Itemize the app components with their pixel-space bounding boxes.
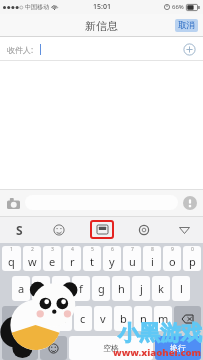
staticText: g: [98, 281, 105, 296]
staticText: m: [158, 311, 169, 326]
button[interactable]: Camera: [5, 195, 21, 211]
staticText: f: [79, 281, 83, 296]
button[interactable]: Emoji keyboard: [40, 336, 67, 360]
button[interactable]: 取消: [175, 19, 198, 32]
button[interactable]: d: [52, 276, 70, 301]
staticText: a: [18, 281, 25, 296]
button[interactable]: 1: [2, 246, 21, 271]
button[interactable]: Sogou input: [10, 221, 28, 239]
button[interactable]: 2: [23, 246, 41, 271]
button[interactable]: v: [94, 306, 112, 331]
button[interactable]: 0: [183, 246, 201, 271]
staticText: www.xiaohei.com: [113, 346, 202, 359]
staticText: p: [189, 254, 196, 269]
button[interactable]: 空格: [69, 336, 153, 360]
button[interactable]: 6: [103, 246, 121, 271]
staticText: 123: [13, 343, 27, 354]
staticText: 空格: [103, 343, 119, 353]
button[interactable]: Backspace: [174, 306, 201, 331]
button[interactable]: Emoji: [50, 221, 68, 239]
staticText: 4: [71, 246, 74, 253]
button[interactable]: s: [32, 276, 50, 301]
staticText: h: [118, 281, 125, 296]
staticText: 9: [171, 246, 174, 253]
staticText: 15:01: [93, 2, 111, 12]
staticText: 0: [191, 246, 194, 253]
button[interactable]: 9: [163, 246, 181, 271]
button[interactable]: l: [172, 276, 190, 301]
staticText: 66%: [172, 3, 184, 11]
staticText: 小黑游戏: [118, 320, 202, 346]
staticText: r: [70, 254, 75, 269]
button[interactable]: f: [72, 276, 90, 301]
staticText: n: [140, 311, 147, 326]
staticText: z: [39, 311, 45, 326]
staticText: 新信息: [85, 19, 118, 33]
button[interactable]: j: [132, 276, 150, 301]
staticText: 换行: [170, 343, 186, 353]
button[interactable]: h: [112, 276, 130, 301]
staticText: 7: [131, 246, 134, 253]
button[interactable]: b: [114, 306, 132, 331]
staticText: 1: [10, 246, 13, 253]
button[interactable]: z: [32, 306, 51, 331]
staticText: 3: [51, 246, 54, 253]
staticText: b: [120, 311, 127, 326]
button[interactable]: c: [74, 306, 92, 331]
button[interactable]: g: [92, 276, 110, 301]
staticText: v: [100, 311, 106, 326]
button[interactable]: 4: [63, 246, 81, 271]
staticText: l: [180, 281, 183, 296]
staticText: u: [129, 254, 136, 269]
button[interactable]: x: [53, 306, 72, 331]
staticText: y: [109, 254, 115, 269]
staticText: d: [58, 281, 65, 296]
staticText: 8: [151, 246, 154, 253]
staticText: S: [16, 222, 23, 238]
staticText: t: [90, 254, 94, 269]
button[interactable]: Voice input: [182, 195, 198, 211]
button[interactable]: a: [12, 276, 30, 301]
staticText: 取消: [178, 20, 195, 31]
staticText: j: [140, 281, 143, 296]
button[interactable]: 换行: [155, 336, 201, 360]
button[interactable]: 8: [143, 246, 161, 271]
staticText: 2: [31, 246, 34, 253]
button[interactable]: Settings: [135, 221, 153, 239]
staticText: s: [38, 281, 44, 296]
button[interactable]: Add recipient: [182, 42, 197, 57]
button[interactable]: n: [134, 306, 152, 331]
button[interactable]: Numbers: [2, 336, 38, 360]
button[interactable]: Shift: [2, 306, 30, 331]
button[interactable]: k: [152, 276, 170, 301]
staticText: 5: [91, 246, 94, 253]
staticText: 6: [111, 246, 114, 253]
staticText: 收件人:: [7, 44, 34, 55]
button[interactable]: 5: [83, 246, 101, 271]
staticText: e: [49, 254, 56, 269]
staticText: 中国移动: [25, 3, 49, 11]
staticText: w: [28, 254, 37, 269]
button[interactable]: m: [154, 306, 172, 331]
button[interactable]: Keyboard mode: [90, 220, 114, 239]
button[interactable]: 3: [43, 246, 61, 271]
staticText: o: [169, 254, 176, 269]
staticText: k: [158, 281, 164, 296]
staticText: x: [60, 311, 66, 326]
staticText: q: [8, 254, 15, 269]
button[interactable]: Hide keyboard: [175, 221, 193, 239]
staticText: i: [151, 254, 154, 269]
staticText: c: [80, 311, 86, 326]
button[interactable]: 7: [123, 246, 141, 271]
